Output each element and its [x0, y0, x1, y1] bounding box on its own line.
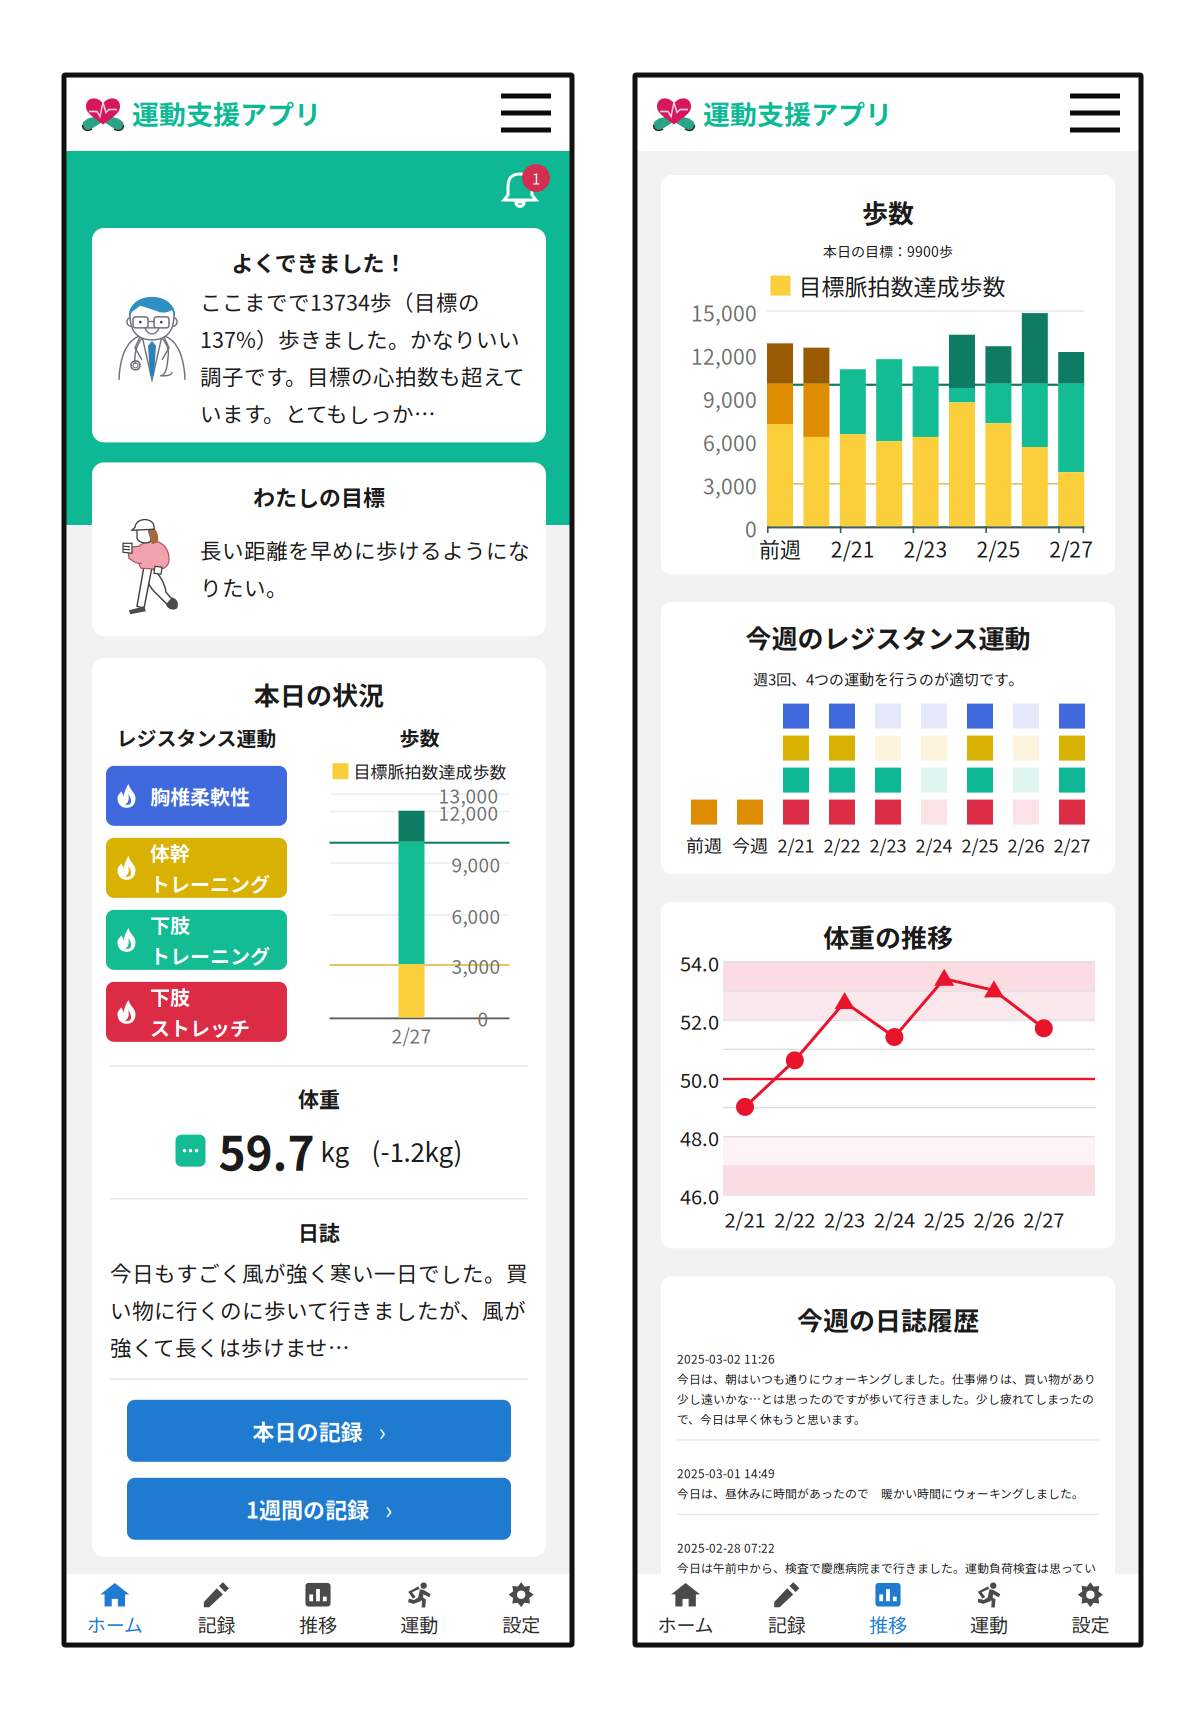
staticText: 運動支援アプリ	[132, 93, 321, 133]
staticText: 体重の推移	[823, 918, 953, 955]
staticText: 12,000	[438, 799, 498, 826]
staticText: 長い距離を早めに歩けるようになりたい。	[200, 534, 530, 602]
staticText: 2/27	[1053, 832, 1090, 858]
staticText: 記録	[768, 1610, 806, 1638]
staticText: 2025-03-01 14:49	[677, 1465, 775, 1482]
staticText: 本日の状況	[254, 675, 384, 713]
staticText: ここまでで13734歩（目標の137%）歩きました。かなりいい調子です。目標の心…	[200, 286, 525, 428]
button[interactable]: 本日の記録	[127, 1400, 511, 1462]
staticText: 記録	[197, 1610, 235, 1638]
staticText: 胸椎柔軟性	[150, 781, 250, 810]
staticText: よくできました！	[231, 246, 406, 278]
staticText: 2/27	[391, 1021, 431, 1049]
staticText: 9,000	[703, 384, 757, 414]
staticText: 2025-03-02 11:26	[677, 1350, 775, 1367]
staticText: 今週の日誌履歴	[797, 1300, 979, 1338]
button[interactable]: 記録	[166, 1574, 267, 1645]
staticText: トレーニング	[150, 869, 270, 898]
staticText: 1週間の記録	[246, 1493, 369, 1525]
staticText: 今週	[732, 832, 768, 858]
button[interactable]: 設定	[1040, 1574, 1141, 1645]
staticText: 2/25	[924, 1204, 965, 1233]
button[interactable]: ホーム	[64, 1574, 166, 1645]
staticText: わたしの目標	[253, 480, 385, 512]
button[interactable]: 運動	[939, 1574, 1040, 1645]
staticText: (-1.2kg)	[371, 1132, 462, 1169]
staticText: 2/26	[973, 1204, 1014, 1233]
staticText: 週3回、4つの運動を行うのが適切です。	[753, 668, 1023, 690]
staticText: レジスタンス運動	[116, 723, 276, 752]
button[interactable]: 運動	[369, 1574, 470, 1645]
staticText: 2/22	[823, 832, 860, 858]
staticText: 歩数	[862, 193, 914, 231]
staticText: 体幹	[150, 838, 190, 867]
staticText: 0	[745, 513, 757, 544]
staticText: 目標脈拍数達成歩数	[353, 759, 506, 783]
button[interactable]: 記録	[736, 1574, 837, 1645]
staticText: 2/27	[1049, 533, 1093, 563]
staticText: 2/21	[777, 832, 814, 858]
staticText: 15,000	[691, 297, 757, 328]
staticText: 52.0	[680, 1007, 719, 1036]
staticText: 2/23	[869, 832, 906, 858]
staticText: ホーム	[658, 1610, 714, 1638]
staticText: 今週のレジスタンス運動	[745, 618, 1030, 656]
staticText: トレーニング	[150, 941, 270, 970]
staticText: 50.0	[680, 1065, 719, 1094]
staticText: 前週	[759, 533, 801, 563]
button[interactable]: 設定	[470, 1574, 572, 1645]
button[interactable]: 推移	[837, 1574, 939, 1645]
button[interactable]: 通知	[496, 162, 544, 210]
staticText: kg	[320, 1132, 349, 1169]
staticText: 13,000	[438, 781, 498, 809]
staticText: 6,000	[451, 902, 500, 930]
staticText: ›	[385, 1491, 392, 1526]
staticText: 2/25	[961, 832, 998, 858]
staticText: 下肢	[150, 982, 190, 1011]
staticText: 推移	[299, 1610, 337, 1638]
staticText: 12,000	[691, 340, 757, 371]
staticText: 今日は午前中から、検査で慶應病院まで行きました。運動負荷検査は思っているより足が…	[677, 1559, 1097, 1616]
staticText: 2/24	[874, 1204, 915, 1233]
staticText: 1	[532, 167, 540, 189]
staticText: 6,000	[703, 427, 757, 457]
staticText: 今日もすごく風が強く寒い一日でした。買い物に行くのに歩いて行きましたが、風が強く…	[110, 1257, 528, 1362]
staticText: 設定	[1071, 1610, 1109, 1638]
staticText: 3,000	[703, 470, 757, 500]
staticText: 体重	[298, 1083, 340, 1113]
staticText: 本日の目標：9900歩	[823, 241, 953, 261]
staticText: 2/23	[904, 533, 948, 563]
staticText: 下肢	[150, 910, 190, 939]
staticText: ›	[378, 1413, 385, 1448]
staticText: 2/22	[774, 1204, 815, 1233]
staticText: 2/21	[724, 1204, 765, 1233]
staticText: 54.0	[680, 948, 719, 977]
button[interactable]: 推移	[267, 1574, 369, 1645]
staticText: 48.0	[680, 1123, 719, 1152]
staticText: 3,000	[451, 952, 500, 980]
staticText: 日誌	[298, 1216, 340, 1247]
staticText: 運動支援アプリ	[703, 93, 892, 133]
button[interactable]: メニュー	[491, 83, 561, 142]
staticText: 推移	[869, 1610, 907, 1638]
button[interactable]: 1週間の記録	[127, 1478, 511, 1540]
staticText: 2/26	[1007, 832, 1044, 858]
staticText: 今日は、昼休みに時間があったので 暖かい時間にウォーキングしました。	[677, 1485, 1084, 1502]
button[interactable]: ホーム	[635, 1574, 736, 1645]
staticText: 運動	[970, 1610, 1008, 1638]
staticText: 2/21	[831, 533, 875, 563]
staticText: 2/23	[824, 1204, 865, 1233]
staticText: 今日は、朝はいつも通りにウォーキングしました。仕事帰りは、買い物があり少し遠いか…	[677, 1370, 1096, 1427]
staticText: 設定	[502, 1610, 540, 1638]
button[interactable]: メニュー	[1060, 83, 1130, 142]
staticText: 2/25	[976, 533, 1020, 563]
staticText: ストレッチ	[150, 1013, 250, 1042]
staticText: 2/27	[1023, 1204, 1064, 1233]
staticText: ホーム	[87, 1610, 143, 1638]
staticText: 0	[477, 1004, 488, 1032]
staticText: 本日の記録	[252, 1415, 362, 1447]
staticText: 46.0	[680, 1181, 719, 1210]
staticText: 9,000	[451, 850, 500, 878]
staticText: 59.7	[218, 1117, 314, 1184]
staticText: 前週	[686, 832, 722, 858]
